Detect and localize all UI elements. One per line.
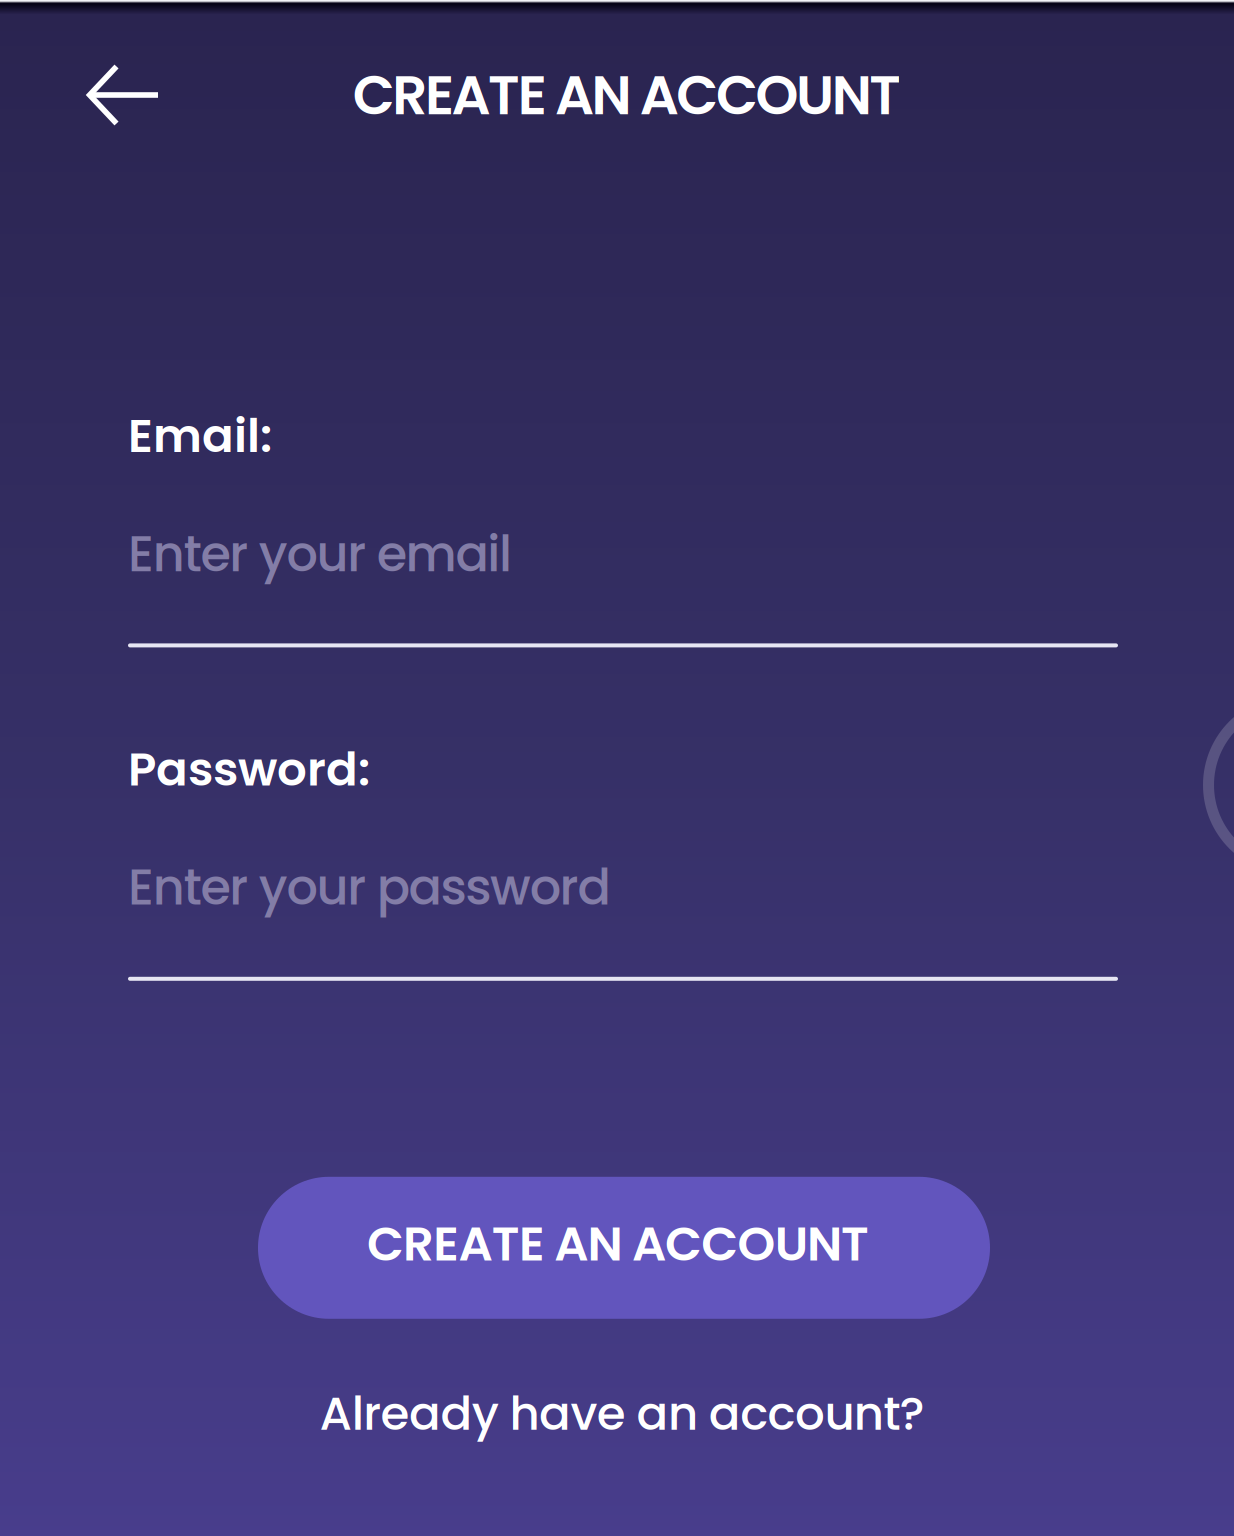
staticText: Password: [128, 736, 370, 802]
staticText: Enter your password [128, 853, 610, 922]
staticText: Email: [128, 403, 272, 468]
staticText: CREATE AN ACCOUNT [353, 57, 901, 133]
button[interactable]: Already have an account? [319, 1381, 925, 1446]
staticText: Already have an account? [319, 1381, 925, 1446]
staticText: Enter your email [128, 519, 512, 588]
button[interactable]: Back [59, 35, 189, 155]
staticText: CREATE AN ACCOUNT [367, 1210, 869, 1277]
button[interactable]: CREATE AN ACCOUNT [258, 1177, 990, 1319]
